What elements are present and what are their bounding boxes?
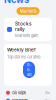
staticText: Fed holds — [12, 98, 28, 100]
staticText: Top stories curated — [7, 55, 40, 59]
staticText: Weekly Brief — [7, 47, 36, 53]
staticText: Stocks rally — [15, 21, 32, 32]
staticText: Read — [27, 62, 31, 77]
staticText: 2m — [45, 91, 50, 95]
staticText: Markets gain — [15, 33, 38, 38]
staticText: Finance News — [4, 0, 40, 5]
staticText: Markets — [19, 8, 36, 14]
staticText: 9m — [45, 99, 50, 100]
staticText: Oil slips — [12, 90, 26, 95]
